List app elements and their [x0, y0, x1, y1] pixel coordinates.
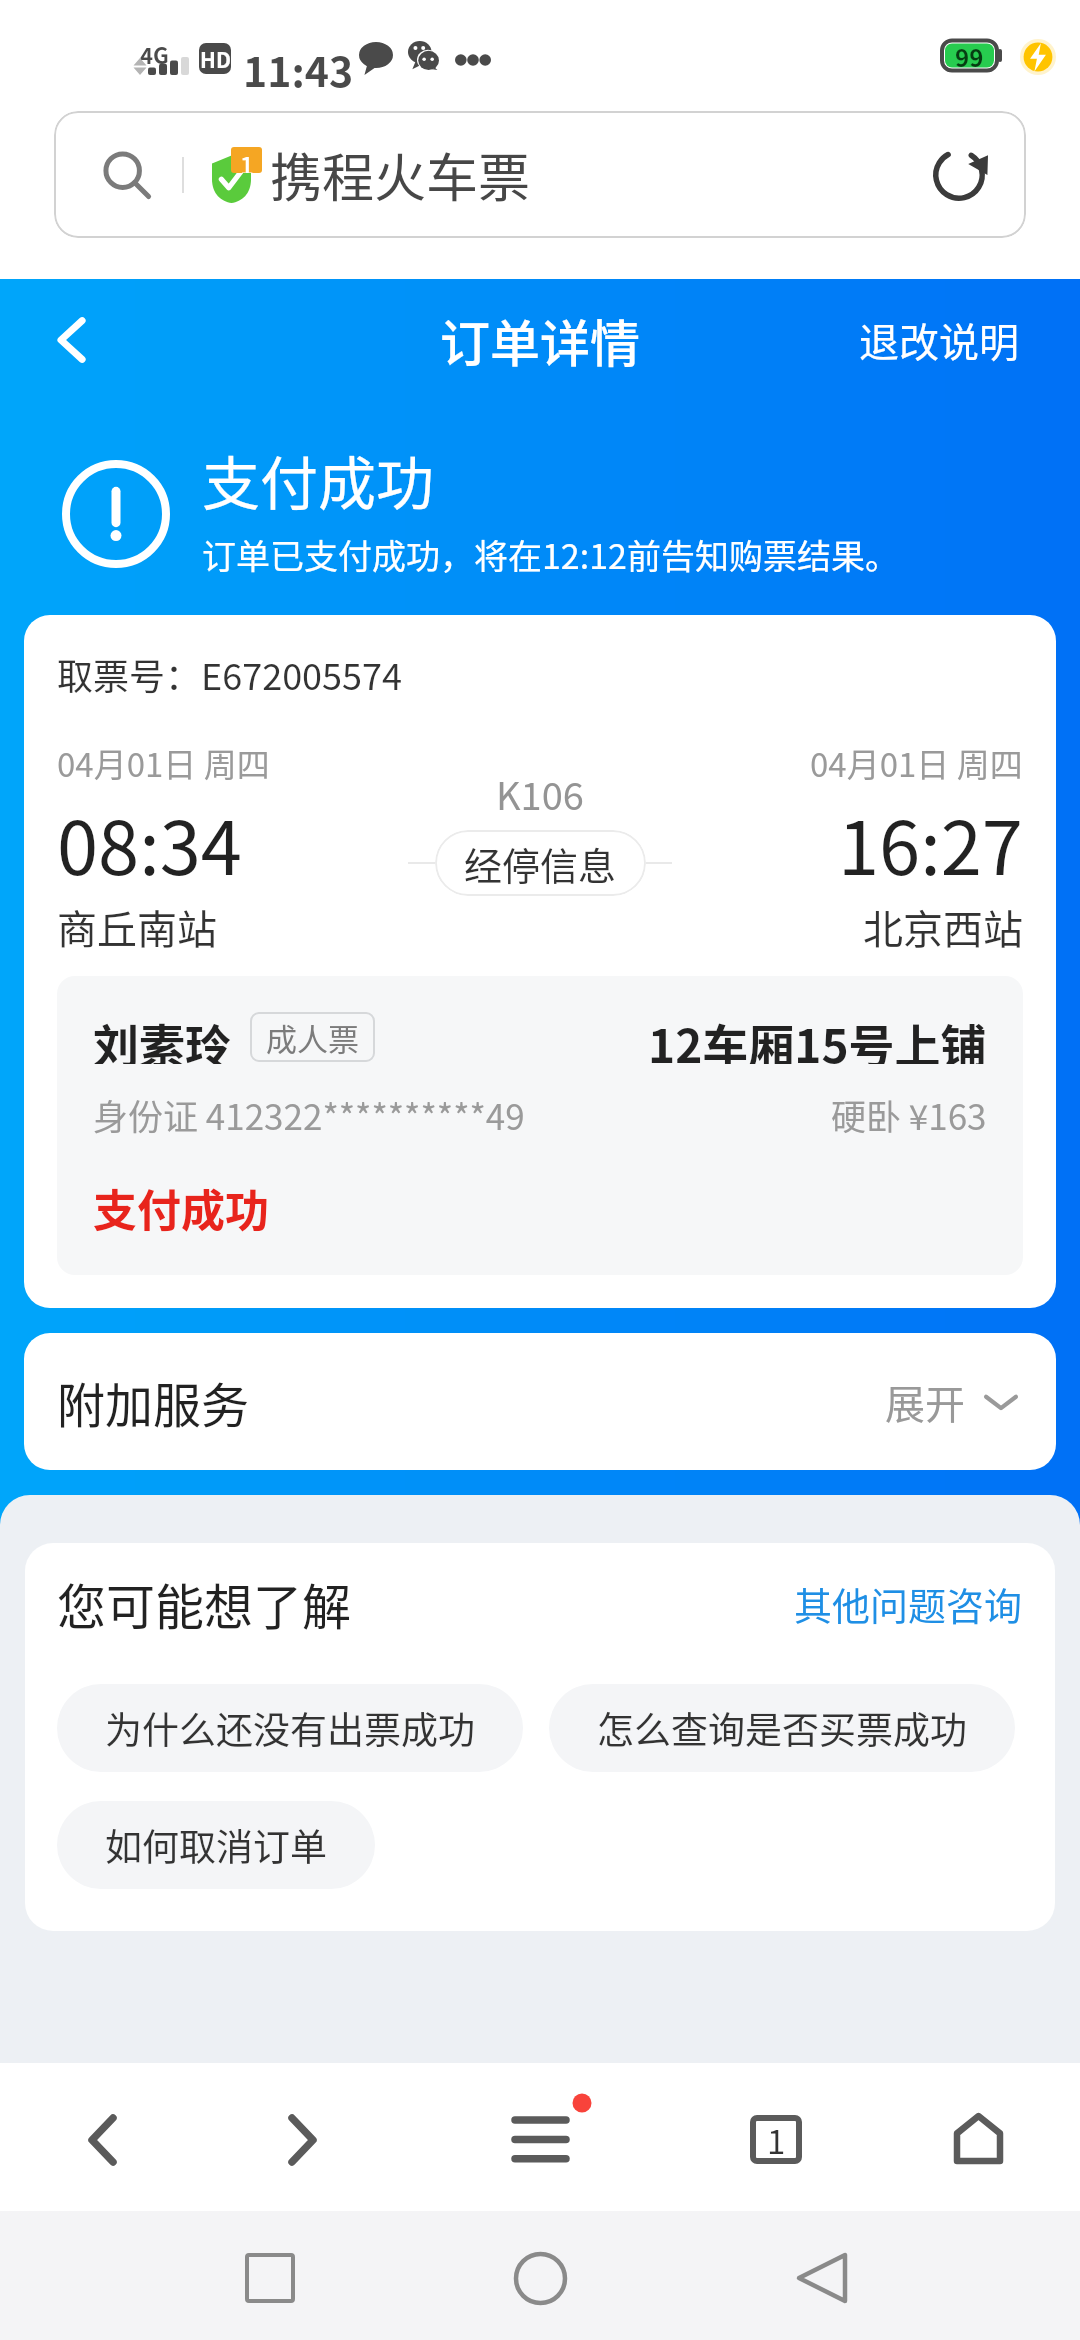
button[interactable]: 为什么还没有出票成功: [57, 1684, 523, 1772]
button[interactable]: Back: [775, 2231, 869, 2325]
staticText: 11:43: [243, 39, 354, 98]
staticText: 04月01日 周四: [57, 739, 270, 787]
staticText: 身份证 412322**********49: [93, 1089, 525, 1140]
staticText: 北京西站: [863, 898, 1023, 956]
staticText: 订单已支付成功，将在12:12前告知购票结果。: [202, 530, 899, 579]
button[interactable]: 其他问题咨询: [794, 1576, 1023, 1631]
button[interactable]: Back: [26, 294, 118, 386]
button[interactable]: 经停信息: [435, 830, 646, 896]
staticText: 1: [767, 2116, 786, 2164]
staticText: 08:34: [57, 789, 242, 896]
staticText: 为什么还没有出票成功: [105, 1701, 475, 1755]
button[interactable]: Home: [493, 2231, 587, 2325]
staticText: 04月01日 周四: [810, 739, 1023, 787]
button[interactable]: 如何取消订单: [57, 1801, 375, 1889]
staticText: 硬卧 ¥163: [831, 1089, 987, 1140]
staticText: 99: [955, 39, 984, 72]
button[interactable]: Search: [54, 111, 1026, 238]
other: Search: [100, 148, 154, 202]
staticText: 展开: [885, 1373, 965, 1431]
staticText: HD: [200, 44, 231, 74]
staticText: 12车厢15号上铺: [648, 1010, 987, 1064]
staticText: 成人票: [266, 1015, 359, 1060]
staticText: 订单详情: [440, 304, 640, 376]
staticText: 退改说明: [859, 311, 1019, 369]
other: Refresh: [930, 146, 988, 204]
staticText: 4G: [140, 38, 169, 70]
staticText: 支付成功: [93, 1176, 269, 1240]
staticText: 附加服务: [57, 1367, 250, 1437]
staticText: 支付成功: [202, 438, 435, 522]
staticText: 您可能想了解: [57, 1568, 352, 1639]
button[interactable]: Home: [932, 2091, 1025, 2186]
button[interactable]: 退改说明: [835, 289, 1080, 391]
button[interactable]: Menu: [489, 2077, 611, 2167]
staticText: 携程火车票: [270, 137, 531, 212]
staticText: 商丘南站: [57, 898, 217, 956]
staticText: 取票号：E672005574: [57, 648, 403, 700]
staticText: 刘素玲: [93, 1010, 231, 1064]
staticText: 1: [240, 147, 254, 173]
staticText: 经停信息: [464, 836, 617, 891]
button[interactable]: 怎么查询是否买票成功: [549, 1684, 1015, 1772]
staticText: 其他问题咨询: [794, 1576, 1023, 1631]
staticText: 怎么查询是否买票成功: [597, 1701, 967, 1755]
button[interactable]: Tabs: [750, 2115, 802, 2164]
button[interactable]: 附加服务: [24, 1333, 1056, 1470]
staticText: K106: [496, 766, 584, 821]
button[interactable]: Recents: [223, 2231, 317, 2325]
staticText: 如何取消订单: [105, 1818, 327, 1872]
button[interactable]: Back: [67, 2093, 138, 2187]
staticText: 16:27: [838, 789, 1023, 896]
button[interactable]: Forward: [267, 2093, 338, 2187]
